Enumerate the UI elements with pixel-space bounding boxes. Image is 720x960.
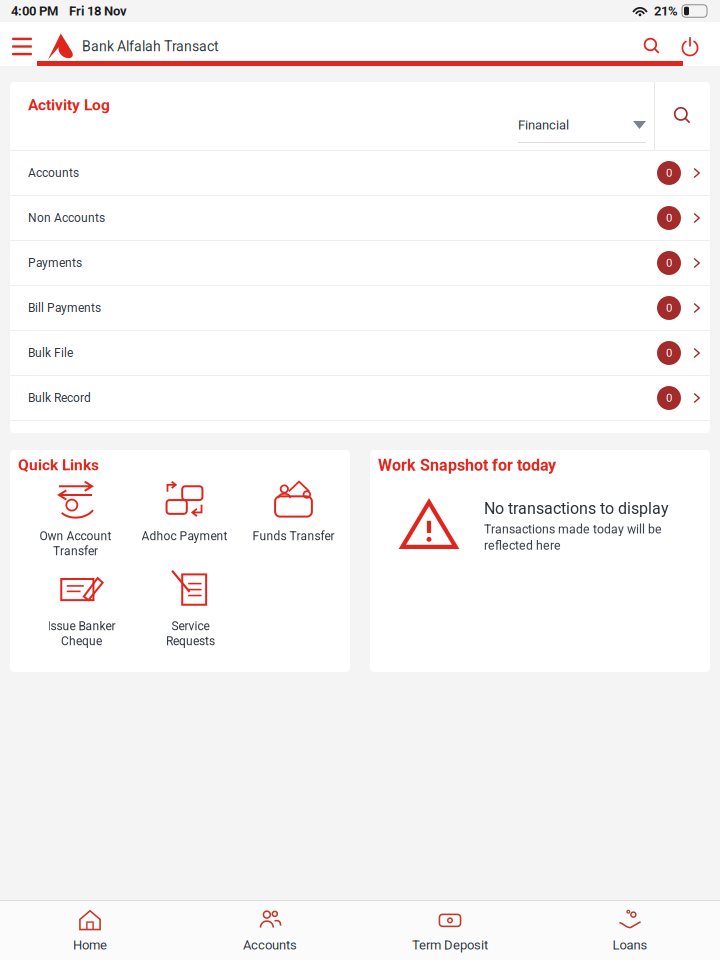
staticText: Requests bbox=[166, 634, 215, 648]
staticText: Quick Links bbox=[18, 456, 99, 474]
button[interactable]: Bulk Record bbox=[10, 376, 710, 421]
staticText: reflected here bbox=[484, 538, 561, 553]
staticText: Financial bbox=[518, 117, 569, 133]
button[interactable]: Bulk File bbox=[10, 331, 710, 376]
staticText: 0 bbox=[666, 256, 672, 270]
staticText: Activity Log bbox=[28, 96, 110, 114]
staticText: 0 bbox=[666, 391, 672, 405]
button[interactable]: Own Account bbox=[39, 476, 111, 558]
staticText: 21% bbox=[654, 3, 678, 19]
staticText: Fri 18 Nov bbox=[69, 3, 127, 19]
staticText: Transfer bbox=[53, 544, 98, 558]
staticText: Loans bbox=[612, 937, 647, 953]
staticText: No transactions to display bbox=[484, 499, 669, 518]
button[interactable]: Search activity bbox=[655, 82, 710, 150]
staticText: 0 bbox=[666, 346, 672, 360]
button[interactable]: Funds Transfer bbox=[252, 476, 334, 543]
staticText: Service bbox=[171, 619, 209, 633]
staticText: 0 bbox=[666, 166, 672, 180]
staticText: Home bbox=[73, 937, 107, 953]
staticText: Term Deposit bbox=[412, 937, 488, 953]
button[interactable]: Log out bbox=[671, 27, 720, 65]
button[interactable]: Service bbox=[166, 566, 215, 648]
button[interactable]: Search bbox=[633, 27, 671, 65]
staticText: Issue Banker bbox=[47, 619, 115, 633]
staticText: 0 bbox=[666, 211, 672, 225]
staticText: Bulk Record bbox=[28, 391, 91, 405]
button[interactable]: Issue Banker bbox=[47, 566, 115, 648]
button[interactable]: Menu bbox=[0, 37, 44, 55]
staticText: Funds Transfer bbox=[252, 529, 334, 543]
button[interactable]: Accounts bbox=[180, 902, 360, 958]
staticText: Transactions made today will be bbox=[484, 522, 662, 536]
button[interactable]: Accounts bbox=[10, 151, 710, 196]
button[interactable]: Bill Payments bbox=[10, 286, 710, 331]
button[interactable]: Adhoc Payment bbox=[141, 476, 227, 543]
button[interactable]: Payments bbox=[10, 241, 710, 286]
staticText: Bill Payments bbox=[28, 301, 101, 315]
staticText: Accounts bbox=[28, 166, 79, 180]
staticText: Payments bbox=[28, 256, 82, 270]
staticText: Accounts bbox=[243, 937, 297, 953]
staticText: Own Account bbox=[39, 529, 111, 543]
button[interactable]: Financial bbox=[518, 115, 646, 143]
button[interactable]: Term Deposit bbox=[360, 902, 540, 958]
staticText: Bulk File bbox=[28, 346, 73, 360]
button[interactable]: Non Accounts bbox=[10, 196, 710, 241]
staticText: 4:00 PM bbox=[11, 3, 58, 19]
button[interactable]: Loans bbox=[540, 902, 720, 958]
staticText: Adhoc Payment bbox=[141, 529, 227, 543]
staticText: Cheque bbox=[61, 634, 102, 648]
staticText: Non Accounts bbox=[28, 211, 105, 225]
button[interactable]: Home bbox=[0, 902, 180, 958]
staticText: 0 bbox=[666, 301, 672, 315]
staticText: Work Snapshot for today bbox=[378, 456, 556, 475]
staticText: Bank Alfalah Transact bbox=[82, 38, 219, 55]
